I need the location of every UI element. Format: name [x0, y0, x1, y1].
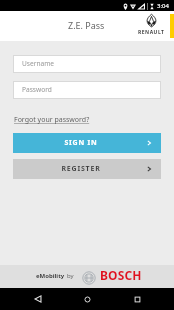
button[interactable]: Recents	[125, 288, 149, 310]
staticText: 3:04	[157, 2, 169, 10]
staticText: by	[67, 272, 74, 280]
staticText: REGISTER	[61, 164, 101, 174]
staticText: Password	[22, 85, 52, 94]
staticText: SIGN IN	[64, 138, 98, 148]
staticText: BOSCH	[100, 267, 142, 283]
button[interactable]: Home	[75, 288, 99, 310]
staticText: Username	[22, 59, 55, 68]
button[interactable]: Back	[26, 288, 50, 310]
button[interactable]: Username	[14, 56, 160, 72]
staticText: eMobility	[36, 272, 65, 280]
button[interactable]: SIGN IN	[13, 133, 161, 153]
staticText: RENAULT	[138, 29, 165, 36]
button[interactable]: Password	[14, 82, 160, 98]
button[interactable]: Forgot your password?	[14, 115, 90, 125]
button[interactable]: REGISTER	[13, 159, 161, 179]
staticText: Z.E. Pass	[68, 19, 105, 31]
